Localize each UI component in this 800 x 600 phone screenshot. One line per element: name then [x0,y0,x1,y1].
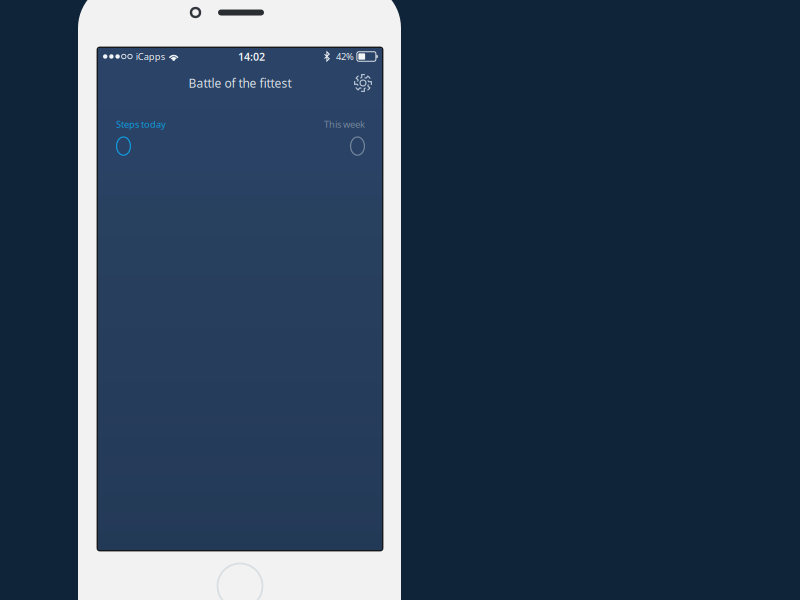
staticText: 14:02 [238,49,265,64]
button[interactable]: Settings [347,67,379,99]
staticText: 42% [336,50,354,63]
button[interactable]: Steps today [116,118,234,156]
staticText: iCapps [136,50,165,63]
staticText: Battle of the fittest [188,75,291,91]
staticText: This week [324,118,365,130]
button[interactable]: This week [247,118,365,156]
staticText: Steps today [116,118,166,130]
